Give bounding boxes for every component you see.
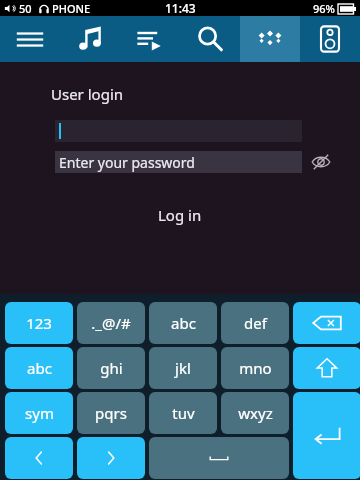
button[interactable]: Search xyxy=(180,16,240,62)
staticText: sym xyxy=(25,403,54,423)
button[interactable]: wxyz xyxy=(221,392,289,434)
button[interactable]: 123 xyxy=(5,302,73,344)
staticText: pqrs xyxy=(95,403,127,423)
staticText: PHONE xyxy=(52,1,91,16)
button[interactable]: ghi xyxy=(77,347,145,389)
staticText: 50 xyxy=(19,1,32,16)
button[interactable]: mno xyxy=(221,347,289,389)
button[interactable]: jkl xyxy=(149,347,217,389)
button[interactable]: tuv xyxy=(149,392,217,434)
button[interactable]: Enter xyxy=(293,392,360,479)
staticText: Enter your password xyxy=(59,153,195,172)
staticText: jkl xyxy=(175,358,191,378)
staticText: def xyxy=(244,313,267,333)
button[interactable]: abc xyxy=(5,347,73,389)
button[interactable]: Menu xyxy=(0,16,60,62)
staticText: wxyz xyxy=(238,403,273,423)
button[interactable]: Next xyxy=(77,437,145,479)
staticText: ._@/# xyxy=(91,313,131,333)
button[interactable]: Previous xyxy=(5,437,73,479)
button[interactable]: sym xyxy=(5,392,73,434)
staticText: mno xyxy=(239,358,272,378)
button[interactable]: Space xyxy=(149,437,289,479)
button[interactable]: Playlist xyxy=(120,16,180,62)
button[interactable]: def xyxy=(221,302,289,344)
button[interactable]: Show password xyxy=(308,149,334,175)
staticText: 96% xyxy=(313,1,335,16)
button[interactable] xyxy=(55,120,302,142)
button[interactable]: abc xyxy=(149,302,217,344)
button[interactable]: Speaker xyxy=(300,16,360,62)
staticText: User login xyxy=(51,84,124,104)
button[interactable]: Enter your password xyxy=(55,151,302,173)
button[interactable]: Effects xyxy=(240,16,300,62)
staticText: tuv xyxy=(172,403,195,423)
button[interactable]: ._@/# xyxy=(77,302,145,344)
staticText: 11:43 xyxy=(165,0,196,16)
staticText: 123 xyxy=(26,313,52,333)
staticText: Log in xyxy=(158,205,202,225)
staticText: abc xyxy=(27,358,52,378)
button[interactable]: Backspace xyxy=(293,302,360,344)
button[interactable]: pqrs xyxy=(77,392,145,434)
staticText: ghi xyxy=(100,358,123,378)
button[interactable]: Music xyxy=(60,16,120,62)
staticText: abc xyxy=(171,313,196,333)
button[interactable]: Shift xyxy=(293,347,360,389)
button[interactable]: Log in xyxy=(158,205,202,225)
